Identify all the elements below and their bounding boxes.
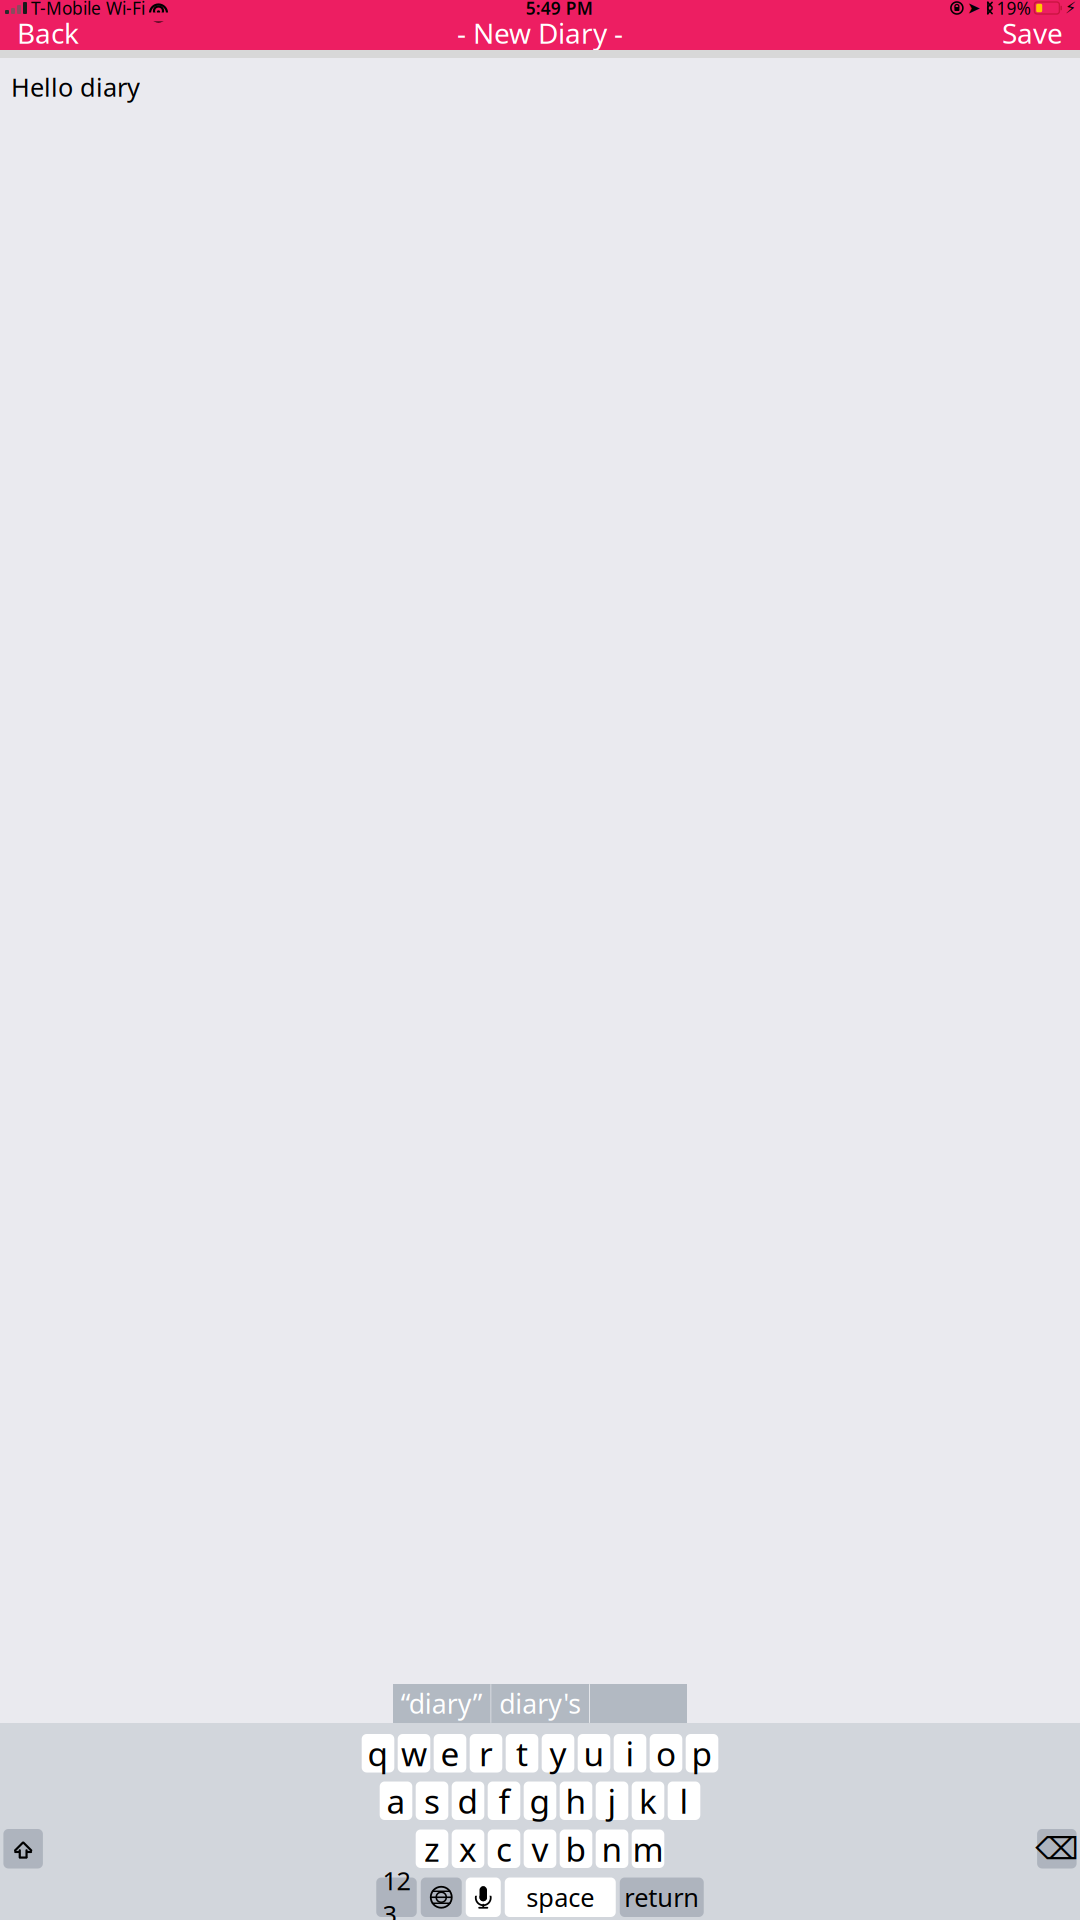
staticText: h <box>565 1779 586 1823</box>
button[interactable]: f <box>488 1781 520 1820</box>
staticText: Save <box>1002 14 1063 52</box>
button[interactable]: q <box>362 1734 394 1772</box>
button[interactable]: s <box>416 1781 448 1820</box>
button[interactable]: e <box>434 1734 466 1772</box>
button[interactable]: j <box>596 1781 628 1820</box>
staticText: l <box>679 1779 688 1823</box>
staticText: u <box>583 1731 604 1775</box>
staticText: r <box>479 1731 493 1775</box>
button[interactable]: return <box>620 1877 704 1917</box>
staticText: b <box>565 1827 586 1871</box>
staticText: - New Diary - <box>457 14 623 52</box>
staticText: diary's <box>499 1686 581 1721</box>
button[interactable]: z <box>416 1829 448 1868</box>
button[interactable]: x <box>452 1829 484 1868</box>
button[interactable]: k <box>632 1781 664 1820</box>
staticText: j <box>607 1779 616 1823</box>
staticText: e <box>440 1731 459 1775</box>
staticText: x <box>459 1827 477 1871</box>
staticText: k <box>639 1779 657 1823</box>
staticText: g <box>529 1779 550 1823</box>
button[interactable]: Back <box>7 8 89 58</box>
button[interactable]: Delete <box>1037 1829 1077 1868</box>
staticText: t <box>516 1731 528 1775</box>
button[interactable]: diary's <box>491 1684 589 1723</box>
staticText: return <box>624 1880 699 1914</box>
staticText: “diary” <box>401 1686 483 1721</box>
button[interactable]: r <box>470 1734 502 1772</box>
button[interactable]: space <box>505 1877 616 1917</box>
staticText: c <box>496 1827 512 1871</box>
staticText: y <box>549 1731 566 1775</box>
staticText: 5:49 PM <box>526 0 593 19</box>
button[interactable]: g <box>524 1781 556 1820</box>
staticText: ⌫ <box>1035 1831 1078 1866</box>
staticText: a <box>386 1779 405 1823</box>
button[interactable]: p <box>686 1734 718 1772</box>
staticText: f <box>498 1779 509 1823</box>
button[interactable]: t <box>506 1734 538 1772</box>
button[interactable]: m <box>632 1829 664 1868</box>
staticText: Hello diary <box>11 70 140 104</box>
staticText: d <box>457 1779 478 1823</box>
staticText: i <box>625 1731 634 1775</box>
button[interactable]: w <box>398 1734 430 1772</box>
staticText: 19% <box>996 0 1030 19</box>
staticText: Back <box>17 14 79 52</box>
staticText: ⚡︎ <box>1065 0 1076 17</box>
button[interactable]: d <box>452 1781 484 1820</box>
staticText: space <box>526 1880 594 1914</box>
button[interactable]: b <box>560 1829 592 1868</box>
button[interactable]: h <box>560 1781 592 1820</box>
button[interactable]: Next keyboard <box>421 1877 462 1917</box>
button[interactable]: v <box>524 1829 556 1868</box>
staticText: n <box>601 1827 622 1871</box>
staticText: 123 <box>382 1864 410 1920</box>
staticText: ➤ <box>967 0 980 17</box>
button[interactable]: 123 <box>376 1877 417 1917</box>
staticText: p <box>691 1731 712 1775</box>
button[interactable]: Save <box>992 8 1073 58</box>
staticText: T-Mobile Wi-Fi <box>31 0 145 19</box>
staticText: m <box>632 1827 663 1871</box>
button[interactable]: “diary” <box>393 1684 490 1723</box>
button[interactable]: i <box>614 1734 646 1772</box>
button[interactable]: Shift <box>3 1829 43 1868</box>
button[interactable]: o <box>650 1734 682 1772</box>
staticText: o <box>656 1731 676 1775</box>
button[interactable]: l <box>668 1781 700 1820</box>
staticText: q <box>367 1731 388 1775</box>
button[interactable]: Dictation <box>466 1877 501 1917</box>
button[interactable]: u <box>578 1734 610 1772</box>
button[interactable]: y <box>542 1734 574 1772</box>
button[interactable]: c <box>488 1829 520 1868</box>
staticText: s <box>424 1779 440 1823</box>
staticText: v <box>531 1827 548 1871</box>
staticText: z <box>424 1827 440 1871</box>
staticText: w <box>401 1731 427 1775</box>
button[interactable]: n <box>596 1829 628 1868</box>
button[interactable]: a <box>380 1781 412 1820</box>
